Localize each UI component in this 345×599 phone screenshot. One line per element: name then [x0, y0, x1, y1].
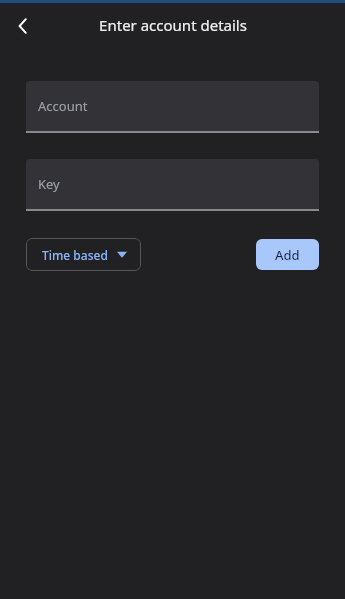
staticText: Key [38, 175, 60, 193]
staticText: Enter account details [99, 15, 247, 35]
staticText: Account [38, 97, 88, 115]
button[interactable]: Key [26, 159, 319, 211]
staticText: Time based [42, 247, 108, 263]
staticText: Add [275, 246, 300, 264]
button[interactable]: Time based [26, 238, 141, 271]
button[interactable]: Add [256, 239, 319, 270]
button[interactable]: Back [0, 3, 46, 48]
button[interactable]: Account [26, 81, 319, 133]
